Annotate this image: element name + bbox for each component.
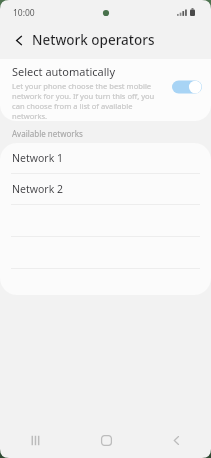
staticText: Available networks bbox=[12, 128, 83, 139]
button[interactable]: Navigate up bbox=[8, 29, 30, 51]
staticText: 10:00 bbox=[13, 7, 35, 19]
staticText: Let your phone choose the best mobile ne… bbox=[12, 81, 157, 121]
staticText: Network operators bbox=[32, 31, 155, 49]
button[interactable]: Select automatically toggle bbox=[172, 78, 202, 96]
button[interactable]: Recent apps bbox=[0, 422, 71, 458]
button[interactable]: Network 2 bbox=[0, 174, 211, 204]
staticText: Network 1 bbox=[12, 151, 63, 165]
staticText: Network 2 bbox=[12, 182, 63, 196]
button[interactable]: Select automatically bbox=[0, 59, 211, 121]
staticText: Select automatically bbox=[12, 64, 115, 79]
button[interactable]: Home bbox=[71, 422, 141, 458]
button[interactable]: Network 1 bbox=[0, 143, 211, 173]
button[interactable]: Back bbox=[141, 422, 211, 458]
